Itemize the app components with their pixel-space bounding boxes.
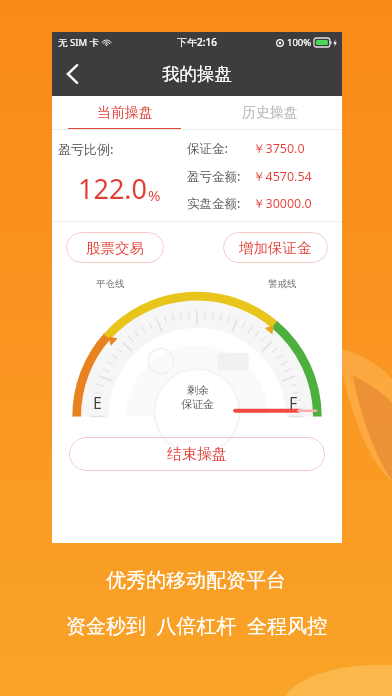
staticText: 优秀的移动配资平台 — [106, 568, 286, 593]
button[interactable]: 当前操盘 — [52, 96, 197, 130]
button[interactable]: 增加保证金 — [223, 232, 328, 263]
staticText: E — [93, 392, 102, 414]
staticText: 增加保证金 — [239, 239, 312, 257]
staticText: 我的操盘 — [162, 63, 232, 85]
staticText: 盈亏金额: — [187, 168, 241, 185]
staticText: 下午2:16 — [177, 35, 217, 49]
staticText: 剩余 — [187, 383, 209, 397]
staticText: 结束操盘 — [167, 445, 227, 464]
staticText: % — [148, 185, 161, 205]
button[interactable]: Back — [52, 54, 92, 94]
staticText: 保证金: — [187, 140, 228, 157]
staticText: ￥3750.0 — [253, 140, 305, 157]
button[interactable]: 股票交易 — [66, 232, 164, 263]
staticText: 122.0 — [78, 170, 148, 207]
staticText: F — [289, 392, 298, 414]
staticText: 实盘金额: — [187, 195, 241, 212]
staticText: 平仓线 — [96, 278, 125, 290]
staticText: 无 SIM 卡 — [58, 36, 99, 49]
staticText: 警戒线 — [268, 278, 297, 290]
staticText: ￥30000.0 — [253, 195, 312, 212]
staticText: 保证金 — [181, 397, 214, 411]
staticText: 100% — [287, 36, 312, 49]
staticText: 当前操盘 — [97, 104, 153, 122]
staticText: ￥4570.54 — [253, 168, 312, 185]
button[interactable]: 结束操盘 — [69, 437, 325, 471]
staticText: 股票交易 — [86, 239, 144, 257]
staticText: 历史操盘 — [242, 104, 298, 122]
staticText: 资金秒到 八倍杠杆 全程风控 — [66, 612, 327, 639]
staticText: 盈亏比例: — [58, 140, 114, 158]
button[interactable]: 历史操盘 — [197, 96, 342, 130]
